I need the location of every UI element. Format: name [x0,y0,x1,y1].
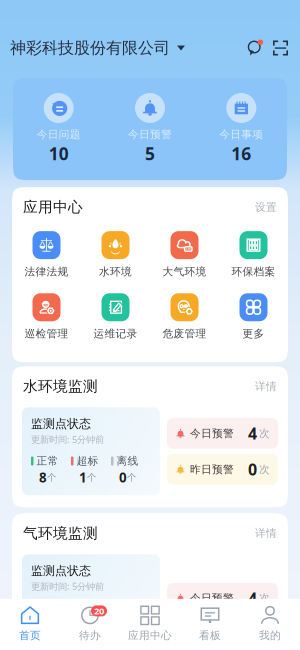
button[interactable]: 更多 [219,293,288,340]
staticText: 今日问题 [37,128,81,141]
button[interactable]: 扫一扫 [271,38,290,57]
button[interactable]: 危废管理 [150,293,219,340]
staticText: 看板 [199,629,221,642]
staticText: 5 [145,142,155,165]
staticText: 超标 [76,601,98,614]
staticText: 详情 [255,380,277,393]
staticText: 个 [87,619,96,630]
staticText: 今日预警 [128,128,172,141]
button[interactable]: 详情 [255,527,277,540]
button[interactable]: 巡检管理 [12,293,81,340]
staticText: 次 [259,592,270,605]
staticText: 设置 [255,201,277,214]
staticText: 法律法规 [24,265,68,278]
staticText: 应用中心 [23,198,83,216]
staticText: 16 [231,142,251,165]
staticText: 超标 [76,454,98,468]
staticText: 1 [79,615,87,633]
button[interactable]: 首页 [0,606,60,642]
staticText: 8 [39,469,47,486]
staticText: 4 [248,423,257,444]
staticText: 更新时间: 5分钟前 [31,580,104,592]
staticText: 今日事项 [219,128,263,141]
staticText: 气环境监测 [23,524,98,542]
staticText: 监测点状态 [31,416,91,431]
button[interactable]: 消息 [245,38,265,58]
staticText: 0 [248,459,257,480]
button[interactable]: 法律法规 [12,231,81,278]
staticText: 4 [248,588,257,609]
staticText: 应用中心 [128,629,172,642]
staticText: 正常 [36,454,58,468]
staticText: 水环境监测 [23,377,98,395]
button[interactable]: 大气环境 [150,231,219,278]
staticText: 待办 [79,629,101,642]
staticText: 个 [127,472,136,483]
staticText: 运维记录 [93,327,137,340]
button[interactable]: 详情 [255,380,277,393]
staticText: 今日预警 [190,592,234,605]
staticText: 更新时间: 5分钟前 [31,433,104,445]
staticText: 水环境 [99,265,132,278]
staticText: 20 [94,605,104,617]
staticText: 详情 [255,527,277,540]
staticText: 危废管理 [162,327,206,340]
button[interactable]: 环保档案 [219,231,288,278]
staticText: 环保档案 [231,265,275,278]
staticText: 神彩科技股份有限公司 [10,38,170,58]
staticText: 10 [49,142,69,165]
button[interactable]: 设置 [255,201,277,214]
button[interactable]: 看板 [180,606,240,642]
staticText: 1 [79,469,87,486]
button[interactable]: 今日预警 [104,93,196,165]
button[interactable]: 水环境 [81,231,150,278]
staticText: 次 [259,463,270,476]
staticText: 0 [119,469,127,486]
button[interactable]: 我的 [240,606,300,642]
button[interactable]: 运维记录 [81,293,150,340]
staticText: 正常 [36,601,58,614]
staticText: 巡检管理 [24,327,68,340]
staticText: 监测点状态 [31,563,91,578]
button[interactable]: 今日问题 [13,93,104,165]
staticText: 个 [47,472,56,483]
staticText: 个 [87,472,96,483]
staticText: 更多 [242,327,264,340]
staticText: 昨日预警 [190,463,234,476]
staticText: 今日预警 [190,427,234,440]
button[interactable]: 应用中心 [120,606,180,642]
staticText: 我的 [259,629,281,642]
staticText: 大气环境 [162,265,206,278]
staticText: 8 [39,615,47,633]
button[interactable]: 今日事项 [196,93,287,165]
button[interactable]: 20 [60,606,120,642]
staticText: 次 [259,427,270,440]
staticText: 离线 [116,454,138,468]
staticText: 首页 [19,629,41,642]
